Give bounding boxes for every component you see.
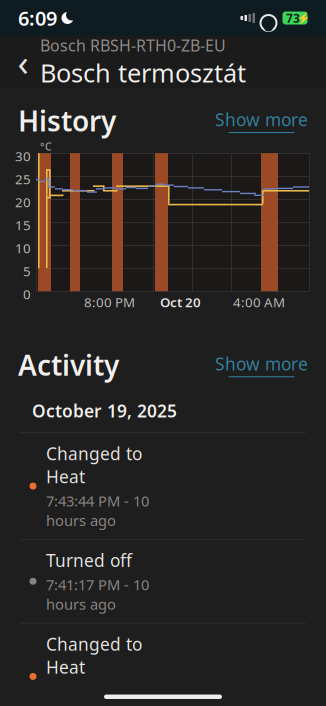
staticText: 0 — [23, 285, 31, 303]
staticText: 10 — [15, 239, 31, 257]
staticText: Show more — [215, 352, 308, 375]
button[interactable]: Back — [6, 40, 40, 84]
staticText: 5:29:12 PM - 13 hours ago — [46, 681, 149, 706]
staticText: 73 — [286, 10, 300, 26]
staticText: 8:00 PM — [84, 293, 135, 311]
staticText: Bosch RBSH-RTH0-ZB-EU — [40, 35, 226, 56]
button[interactable]: Turned off — [0, 540, 326, 623]
button[interactable]: Show more — [215, 108, 308, 133]
staticText: 5 — [23, 262, 31, 280]
staticText: 4:00 AM — [233, 293, 285, 311]
staticText: Changed to Heat — [46, 632, 142, 678]
staticText: ‹ — [17, 38, 28, 86]
staticText: Oct 20 — [160, 293, 201, 311]
staticText: Bosch termosztát — [40, 56, 246, 89]
staticText: Show more — [215, 108, 308, 131]
staticText: History — [18, 102, 116, 139]
staticText: 20 — [15, 193, 31, 211]
staticText: Activity — [18, 346, 119, 383]
staticText: 7:43:44 PM - 10 hours ago — [46, 491, 149, 530]
button[interactable]: Changed to Heat — [0, 623, 326, 706]
button[interactable]: Show more — [215, 352, 308, 377]
staticText: 15 — [15, 216, 31, 234]
staticText: ⚡ — [296, 12, 309, 24]
staticText: Changed to Heat — [46, 442, 142, 488]
staticText: Turned off — [46, 549, 132, 572]
staticText: 7:41:17 PM - 10 hours ago — [46, 575, 149, 614]
staticText: °C — [40, 139, 52, 153]
staticText: October 19, 2025 — [32, 399, 177, 422]
staticText: 25 — [15, 170, 31, 188]
button[interactable]: Changed to Heat — [0, 433, 326, 539]
staticText: 30 — [15, 147, 31, 165]
staticText: 6:09 — [18, 5, 57, 31]
